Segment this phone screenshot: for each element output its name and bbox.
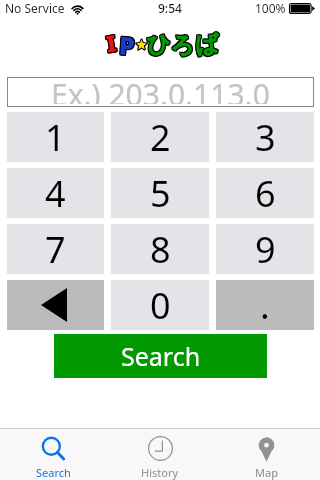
staticText: ひ xyxy=(147,28,173,59)
staticText: I xyxy=(103,27,118,60)
staticText: P xyxy=(118,28,136,63)
staticText: Map xyxy=(255,465,278,480)
button[interactable]: 7 xyxy=(7,224,104,274)
staticText: ろ xyxy=(171,29,197,60)
staticText: . xyxy=(260,281,270,330)
staticText: ば xyxy=(194,30,220,61)
button[interactable]: Backspace xyxy=(7,280,104,330)
staticText: 3 xyxy=(255,113,276,162)
staticText: P xyxy=(117,26,135,61)
staticText: No Service xyxy=(5,0,65,16)
staticText: ひ xyxy=(148,29,174,60)
staticText: ひ xyxy=(146,27,172,58)
staticText: P xyxy=(118,26,136,61)
staticText: 6 xyxy=(255,169,276,218)
staticText: I xyxy=(104,25,120,57)
staticText: P xyxy=(120,28,138,63)
staticText: I xyxy=(104,28,120,61)
button[interactable]: Map xyxy=(213,429,320,480)
staticText: 9:54 xyxy=(158,0,182,16)
staticText: ろ xyxy=(170,31,196,62)
staticText: I xyxy=(103,25,119,58)
staticText: P xyxy=(118,27,136,62)
staticText: ば xyxy=(195,30,221,61)
staticText: P xyxy=(118,29,136,64)
staticText: ば xyxy=(195,28,221,59)
staticText: ひ xyxy=(145,29,171,60)
staticText: ろ xyxy=(171,29,197,60)
staticText: I xyxy=(103,26,118,59)
staticText: Search xyxy=(121,339,201,373)
staticText: ひ xyxy=(147,30,173,61)
staticText: P xyxy=(116,27,134,62)
staticText: ひ xyxy=(146,28,172,59)
staticText: P xyxy=(119,28,137,63)
button[interactable]: 4 xyxy=(7,168,104,218)
button[interactable]: 2 xyxy=(111,112,209,162)
staticText: P xyxy=(119,29,137,64)
staticText: 2 xyxy=(150,113,171,162)
button[interactable]: 5 xyxy=(111,168,209,218)
staticText: Search xyxy=(36,465,71,480)
staticText: 9 xyxy=(255,225,276,274)
staticText: 1 xyxy=(45,113,66,162)
staticText: 8 xyxy=(150,225,171,274)
button[interactable]: Search xyxy=(54,334,267,378)
button[interactable]: 6 xyxy=(216,168,314,218)
staticText: 7 xyxy=(45,225,66,274)
staticText: ろ xyxy=(169,29,195,60)
staticText: ば xyxy=(195,30,221,61)
staticText: ひ xyxy=(145,28,171,59)
staticText: ひ xyxy=(147,29,173,60)
staticText: P xyxy=(117,28,135,63)
staticText: ろ xyxy=(171,31,197,62)
staticText: 5 xyxy=(150,169,171,218)
button[interactable]: . xyxy=(216,280,314,330)
button[interactable]: 3 xyxy=(216,112,314,162)
staticText: ば xyxy=(194,28,220,59)
staticText: ろ xyxy=(172,30,198,61)
staticText: I xyxy=(104,27,119,60)
staticText: P xyxy=(117,28,135,63)
button[interactable]: History xyxy=(106,429,213,480)
staticText: ば xyxy=(193,30,219,61)
staticText: ひ xyxy=(146,29,172,60)
staticText: P xyxy=(117,26,135,61)
button[interactable]: 1 xyxy=(7,112,104,162)
staticText: ひ xyxy=(144,29,170,60)
staticText: ろ xyxy=(169,30,195,61)
staticText: P xyxy=(117,27,135,62)
staticText: ろ xyxy=(169,31,195,62)
staticText: History xyxy=(141,465,179,480)
button[interactable]: Search xyxy=(0,429,106,480)
staticText: ば xyxy=(195,28,221,59)
button[interactable]: 8 xyxy=(111,224,209,274)
staticText: ば xyxy=(193,28,219,59)
staticText: I xyxy=(103,27,118,60)
staticText: I xyxy=(106,26,121,58)
staticText: ば xyxy=(193,29,219,60)
staticText: I xyxy=(105,27,120,59)
staticText: ば xyxy=(193,28,219,59)
staticText: ば xyxy=(196,29,222,60)
staticText: ひ xyxy=(147,28,173,59)
staticText: 0 xyxy=(150,281,171,330)
staticText: I xyxy=(102,27,117,59)
button[interactable]: 9 xyxy=(216,224,314,274)
staticText: ば xyxy=(195,29,221,60)
staticText: ば xyxy=(193,30,219,61)
staticText: ろ xyxy=(170,32,196,63)
staticText: ひ xyxy=(146,31,172,62)
button[interactable]: 0 xyxy=(111,280,209,330)
staticText: ひ xyxy=(145,30,171,61)
staticText: I xyxy=(105,26,120,58)
staticText: ろ xyxy=(170,29,196,60)
staticText: I xyxy=(103,24,119,57)
staticText: ひ xyxy=(145,28,171,59)
staticText: ひ xyxy=(145,30,171,61)
staticText: ひ xyxy=(146,30,172,61)
staticText: ろ xyxy=(170,28,196,59)
staticText: P xyxy=(119,29,137,64)
staticText: ば xyxy=(194,31,220,62)
staticText: ば xyxy=(194,29,220,60)
